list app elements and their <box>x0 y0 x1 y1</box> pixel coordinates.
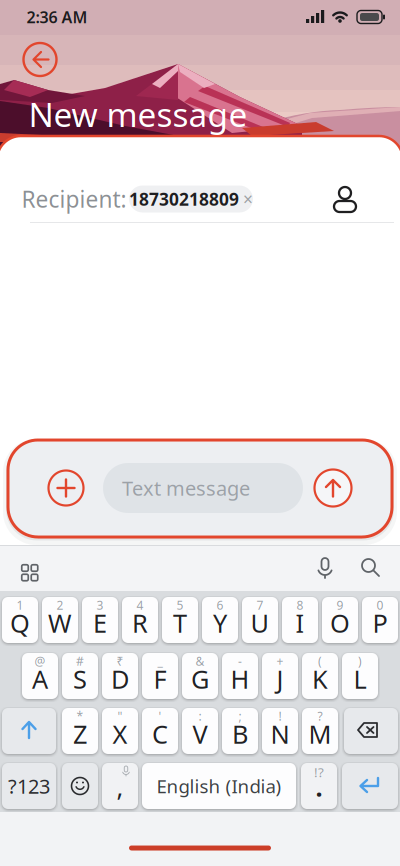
button[interactable] <box>48 470 83 505</box>
staticText: M <box>308 717 331 751</box>
button[interactable] <box>23 43 56 76</box>
button[interactable]: " <box>102 708 138 754</box>
staticText: 18730218809 <box>129 187 239 210</box>
staticText: S <box>73 662 87 696</box>
button[interactable]: ( <box>302 653 338 699</box>
staticText: Text message <box>122 475 250 501</box>
button[interactable]: Text message <box>103 463 303 513</box>
staticText: D <box>111 662 129 696</box>
staticText: ? <box>317 708 322 724</box>
staticText: N <box>270 717 289 751</box>
staticText: !? <box>314 763 324 781</box>
staticText: 0 <box>376 597 383 613</box>
staticText: : <box>198 708 201 724</box>
staticText: V <box>192 717 207 751</box>
staticText: ( <box>318 653 322 669</box>
button[interactable] <box>344 708 398 754</box>
staticText: I <box>295 606 304 640</box>
button[interactable]: ; <box>222 708 258 754</box>
button[interactable]: : <box>182 708 218 754</box>
staticText: J <box>276 662 283 696</box>
button[interactable]: 1 <box>2 597 38 643</box>
staticText: New message <box>28 92 247 136</box>
button[interactable]: 5 <box>162 597 198 643</box>
staticText: & <box>195 653 204 669</box>
staticText: 8 <box>296 597 303 613</box>
staticText: 1 <box>16 597 23 613</box>
staticText: English (India) <box>156 774 281 798</box>
staticText: G <box>191 662 209 696</box>
button[interactable]: 2 <box>42 597 78 643</box>
button[interactable]: & <box>182 653 218 699</box>
staticText: ; <box>238 708 241 724</box>
button[interactable]: 9 <box>322 597 358 643</box>
button[interactable]: _ <box>142 653 178 699</box>
staticText: _ <box>157 653 162 669</box>
button[interactable]: ?123 <box>2 763 56 809</box>
button[interactable] <box>62 763 98 809</box>
button[interactable]: ! <box>262 708 298 754</box>
button[interactable]: 7 <box>242 597 278 643</box>
staticText: + <box>276 653 283 669</box>
staticText: Y <box>213 606 227 640</box>
staticText: K <box>312 662 328 696</box>
button[interactable] <box>2 708 56 754</box>
button[interactable]: # <box>62 653 98 699</box>
staticText: F <box>153 662 166 696</box>
button[interactable]: 0 <box>362 597 398 643</box>
staticText: ! <box>278 708 281 724</box>
staticText: Z <box>73 717 87 751</box>
staticText: L <box>353 662 366 696</box>
button[interactable]: English (India) <box>142 763 296 809</box>
button[interactable] <box>342 763 398 809</box>
staticText: X <box>112 717 127 751</box>
button[interactable] <box>17 560 33 576</box>
button[interactable]: 4 <box>122 597 158 643</box>
button[interactable]: 8 <box>282 597 318 643</box>
staticText: 9 <box>336 597 343 613</box>
staticText: Recipient: <box>21 184 126 214</box>
button[interactable]: ? <box>302 708 338 754</box>
button[interactable]: !? <box>301 763 337 809</box>
button[interactable]: @ <box>22 653 58 699</box>
staticText: × <box>243 187 253 210</box>
button[interactable]: 18730218809 <box>129 185 253 212</box>
button[interactable] <box>362 559 380 577</box>
staticText: H <box>230 662 249 696</box>
button[interactable]: , <box>102 763 138 809</box>
staticText: B <box>232 717 248 751</box>
staticText: 2:36 AM <box>26 6 87 28</box>
button[interactable]: - <box>222 653 258 699</box>
button[interactable] <box>332 186 358 212</box>
staticText: ?123 <box>8 773 50 799</box>
staticText: R <box>132 606 148 640</box>
staticText: U <box>250 606 269 640</box>
button[interactable]: + <box>262 653 298 699</box>
staticText: . <box>315 770 322 804</box>
staticText: C <box>152 717 168 751</box>
staticText: T <box>173 606 187 640</box>
staticText: * <box>76 708 83 724</box>
staticText: - <box>238 653 242 669</box>
staticText: E <box>93 606 107 640</box>
staticText: ' <box>158 708 161 724</box>
button[interactable]: ' <box>142 708 178 754</box>
button[interactable]: ) <box>342 653 378 699</box>
button[interactable]: * <box>62 708 98 754</box>
staticText: @ <box>34 653 45 669</box>
button[interactable] <box>314 469 351 506</box>
staticText: W <box>48 606 72 640</box>
button[interactable]: ₹ <box>102 653 138 699</box>
staticText: # <box>76 653 84 669</box>
staticText: A <box>32 662 48 696</box>
staticText: 2 <box>56 597 63 613</box>
staticText: 3 <box>96 597 103 613</box>
button[interactable] <box>314 557 336 579</box>
button[interactable]: 6 <box>202 597 238 643</box>
staticText: " <box>117 708 122 724</box>
staticText: 5 <box>176 597 183 613</box>
staticText: , <box>116 770 123 804</box>
button[interactable]: 3 <box>82 597 118 643</box>
staticText: ) <box>358 653 362 669</box>
staticText: 7 <box>256 597 263 613</box>
